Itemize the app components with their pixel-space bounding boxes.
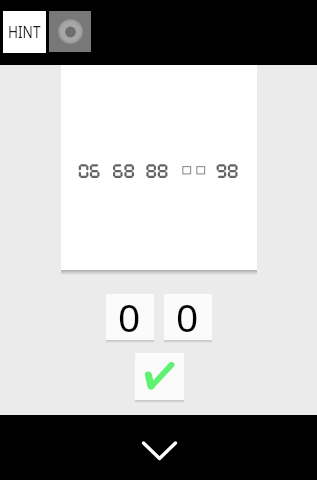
staticText: 0 — [118, 290, 141, 336]
button[interactable]: Toggle sound — [49, 11, 91, 52]
button[interactable]: 0 — [106, 294, 154, 340]
staticText: 0 — [176, 290, 199, 336]
button[interactable]: Next level — [0, 415, 317, 480]
button[interactable]: Check answer — [135, 353, 184, 400]
button[interactable]: 0 — [164, 294, 212, 340]
staticText: HINT — [8, 21, 41, 43]
button[interactable]: HINT — [3, 11, 46, 53]
